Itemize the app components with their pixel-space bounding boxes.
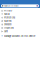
button[interactable]: Manage accounts on this device [0,34,40,38]
button[interactable]: Snoozed [0,23,40,26]
staticText: Manage accounts on this device [4,35,35,37]
button[interactable]: Starred [0,19,40,23]
staticText: Snoozed [4,23,11,26]
staticText: Starred [4,20,11,22]
staticText: Important [4,27,14,29]
button[interactable]: Sent [0,30,40,33]
staticText: Search in mail [4,5,19,7]
button[interactable]: Social [0,12,40,16]
staticText: Social [4,13,10,16]
button[interactable]: Promotions [0,16,40,19]
staticText: Sent [4,30,8,33]
staticText: Promotions [4,16,15,19]
button[interactable]: Important [0,26,40,30]
button[interactable]: Primary [0,9,40,12]
staticText: Primary [4,9,12,12]
